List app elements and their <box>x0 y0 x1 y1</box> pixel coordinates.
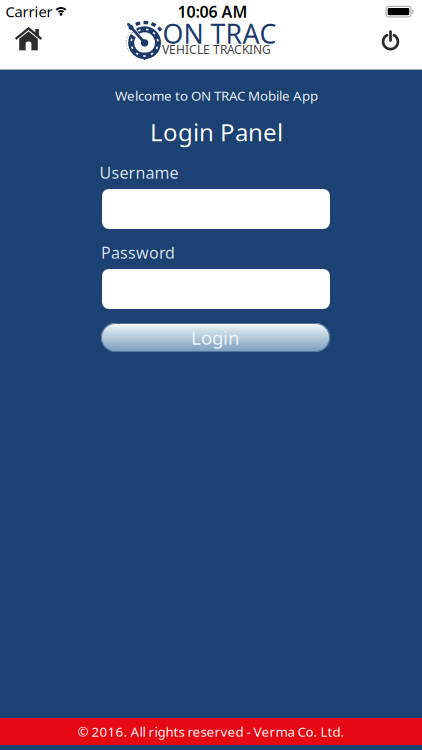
button[interactable] <box>102 269 330 309</box>
staticText: Welcome to ON TRAC Mobile App <box>115 87 318 104</box>
staticText: © 2016. All rights reserved - Verma Co. … <box>77 723 344 740</box>
staticText: Username <box>99 162 178 183</box>
button[interactable] <box>372 23 408 59</box>
button[interactable]: Login <box>101 323 330 352</box>
staticText: Login <box>191 325 240 350</box>
staticText: Carrier <box>5 2 52 21</box>
staticText: Password <box>101 242 175 263</box>
staticText: ON TRAC <box>162 16 276 51</box>
staticText: 10:06 AM <box>177 1 247 22</box>
staticText: VEHICLE TRACKING <box>162 41 271 57</box>
button[interactable] <box>8 19 48 57</box>
staticText: Login Panel <box>150 116 283 148</box>
button[interactable] <box>102 189 330 229</box>
